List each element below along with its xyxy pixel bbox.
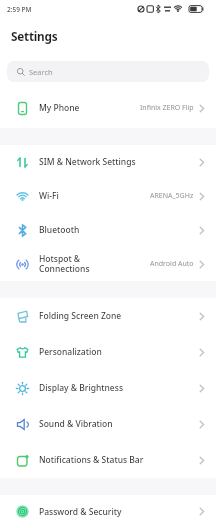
staticText: Settings	[11, 28, 58, 44]
button[interactable]: Bluetooth	[0, 213, 216, 247]
button[interactable]: Notifications & Status Bar	[0, 442, 216, 478]
staticText: Notifications & Status Bar	[39, 454, 144, 466]
staticText: Search	[29, 67, 53, 77]
button[interactable]: Folding Screen Zone	[0, 298, 216, 334]
staticText: Personalization	[39, 346, 102, 358]
button[interactable]: Display & Brightness	[0, 370, 216, 406]
button[interactable]: Wi-Fi	[0, 179, 216, 213]
staticText: Android Auto	[150, 259, 194, 269]
staticText: 2:59 PM	[7, 5, 32, 14]
button[interactable]: Personalization	[0, 334, 216, 370]
staticText: Wi-Fi	[39, 190, 59, 202]
staticText: Hotspot & Connections	[39, 253, 90, 275]
button[interactable]: Password & Security	[0, 495, 216, 528]
button[interactable]: SIM & Network Settings	[0, 145, 216, 179]
staticText: Password & Security	[39, 506, 122, 518]
staticText: ARENA_5GHz	[150, 191, 194, 201]
staticText: SIM & Network Settings	[39, 156, 136, 168]
button[interactable]: My Phone	[0, 88, 216, 128]
button[interactable]: Sound & Vibration	[0, 406, 216, 442]
button[interactable]: Hotspot & Connections	[0, 247, 216, 281]
staticText: Display & Brightness	[39, 382, 124, 394]
staticText: Infinix ZERO Flip	[140, 103, 194, 113]
staticText: My Phone	[39, 102, 80, 114]
button[interactable]: Search	[7, 61, 209, 82]
staticText: Folding Screen Zone	[39, 310, 122, 322]
staticText: Bluetooth	[39, 224, 80, 236]
staticText: Sound & Vibration	[39, 418, 113, 430]
